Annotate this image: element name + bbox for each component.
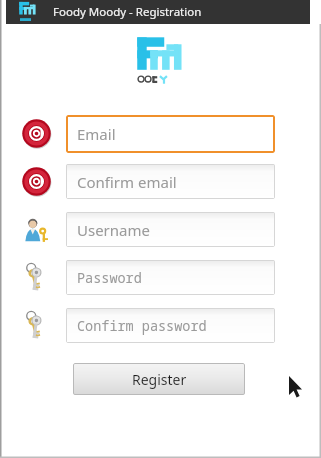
- other: Foody Moody icon: [18, 1, 38, 23]
- staticText: Username: [77, 220, 150, 240]
- staticText: Password: [77, 269, 142, 287]
- button[interactable]: Email: [66, 115, 275, 153]
- other: Password field icon: [21, 262, 52, 293]
- other: Email field icon: [21, 118, 52, 149]
- other: Password field icon: [21, 310, 52, 341]
- other: Email field icon: [21, 166, 52, 197]
- button[interactable]: Password: [66, 260, 275, 295]
- staticText: Confirm password: [77, 317, 207, 335]
- button[interactable]: Register: [73, 363, 245, 395]
- staticText: Foody Moody - Registration: [53, 4, 202, 20]
- button[interactable]: Confirm password: [66, 308, 275, 343]
- other: Username field icon: [21, 214, 52, 245]
- staticText: Confirm email: [77, 172, 177, 192]
- button[interactable]: Confirm email: [66, 164, 275, 199]
- button[interactable]: Username: [66, 212, 275, 247]
- staticText: Email: [77, 124, 116, 144]
- staticText: Register: [132, 370, 187, 389]
